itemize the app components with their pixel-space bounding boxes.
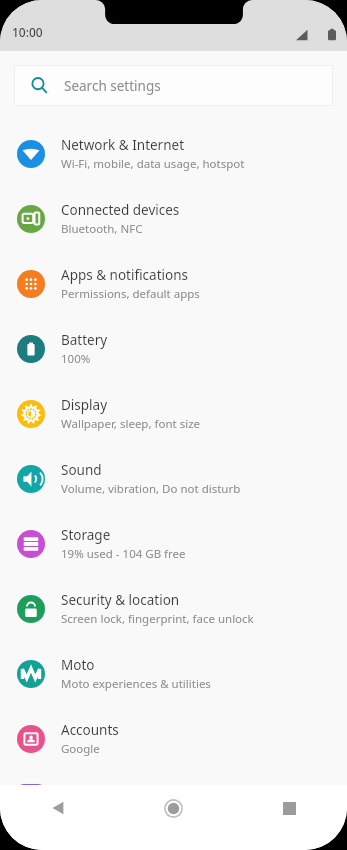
staticText: Apps & notifications xyxy=(61,266,188,284)
staticText: Sound xyxy=(61,461,102,479)
staticText: Connected devices xyxy=(61,201,180,219)
staticText: Storage xyxy=(61,526,111,544)
staticText: Search settings xyxy=(64,77,161,95)
staticText: Security & location xyxy=(61,591,180,609)
button[interactable]: Security & location xyxy=(0,576,347,641)
staticText: Battery xyxy=(61,331,108,349)
button[interactable]: Display xyxy=(0,381,347,446)
staticText: Google xyxy=(61,741,100,757)
staticText: Screen lock, fingerprint, face unlock xyxy=(61,611,254,627)
staticText: Moto xyxy=(61,656,95,674)
button[interactable]: Sound xyxy=(0,446,347,511)
staticText: 100% xyxy=(61,351,91,367)
staticText: Moto experiences & utilities xyxy=(61,676,211,692)
button[interactable] xyxy=(0,771,347,785)
button[interactable]: Search settings xyxy=(14,65,333,106)
button[interactable]: Battery xyxy=(0,316,347,381)
staticText: Display xyxy=(61,396,108,414)
staticText: 10:00 xyxy=(12,24,43,40)
staticText: 19% used - 104 GB free xyxy=(61,546,186,562)
staticText: Wi-Fi, mobile, data usage, hotspot xyxy=(61,156,245,172)
button[interactable]: Back xyxy=(0,785,115,831)
staticText: Accounts xyxy=(61,721,119,739)
button[interactable]: Recent apps xyxy=(231,785,347,831)
button[interactable]: Apps & notifications xyxy=(0,251,347,316)
button[interactable]: Home xyxy=(115,785,231,831)
staticText: Permissions, default apps xyxy=(61,286,200,302)
button[interactable]: Accounts xyxy=(0,706,347,771)
staticText: Volume, vibration, Do not disturb xyxy=(61,481,241,497)
staticText: Wallpaper, sleep, font size xyxy=(61,416,201,432)
button[interactable]: Network & Internet xyxy=(0,121,347,186)
staticText: Network & Internet xyxy=(61,136,185,154)
button[interactable]: Connected devices xyxy=(0,186,347,251)
button[interactable]: Storage xyxy=(0,511,347,576)
button[interactable]: Moto xyxy=(0,641,347,706)
staticText: Bluetooth, NFC xyxy=(61,221,143,237)
